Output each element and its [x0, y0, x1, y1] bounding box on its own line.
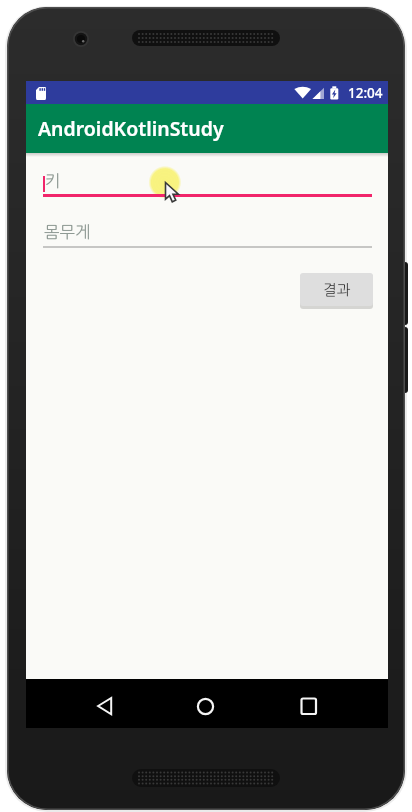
staticText: 몸무게 [44, 224, 91, 241]
button[interactable] [267, 679, 388, 728]
staticText: AndroidKotlinStudy [38, 115, 224, 142]
staticText: 12:04 [348, 84, 383, 102]
staticText: 결과 [323, 283, 351, 297]
button[interactable] [26, 679, 146, 728]
button[interactable]: 결과 [300, 273, 373, 306]
staticText: 키 [45, 173, 61, 190]
button[interactable] [146, 679, 267, 728]
